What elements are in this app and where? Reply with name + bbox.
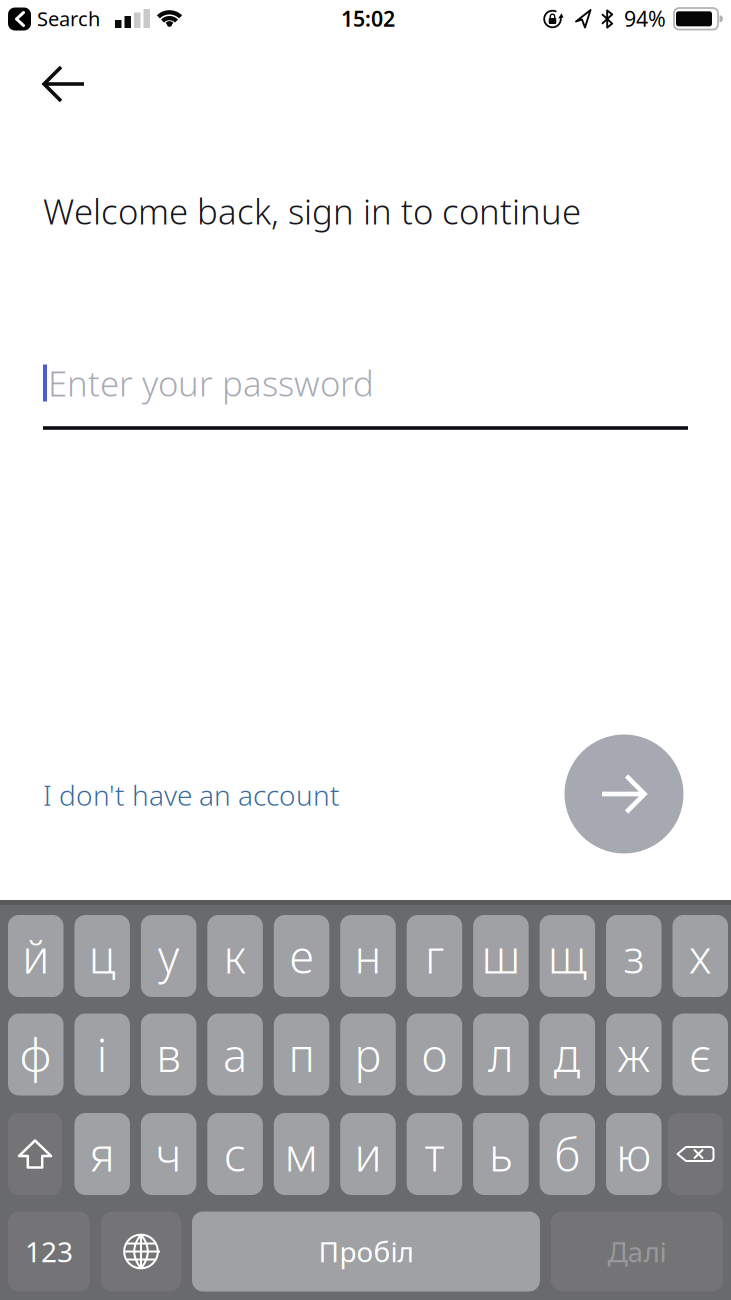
staticText: г — [425, 926, 444, 986]
button[interactable]: Enter your password — [29, 336, 702, 436]
staticText: у — [158, 926, 180, 986]
staticText: о — [421, 1024, 447, 1085]
button[interactable]: щ — [540, 915, 595, 997]
button[interactable]: м — [274, 1113, 329, 1195]
staticText: 15:02 — [341, 4, 395, 33]
staticText: щ — [548, 926, 587, 986]
button[interactable]: і — [74, 1013, 130, 1095]
button[interactable]: Delete — [668, 1113, 723, 1195]
button[interactable]: Пробіл — [192, 1211, 540, 1291]
button[interactable]: с — [207, 1113, 263, 1195]
button[interactable]: й — [8, 915, 63, 997]
staticText: а — [223, 1024, 247, 1085]
button[interactable]: л — [473, 1013, 529, 1095]
staticText: п — [289, 1024, 315, 1085]
button[interactable]: п — [274, 1013, 329, 1095]
button[interactable]: и — [340, 1113, 396, 1195]
staticText: я — [90, 1124, 115, 1184]
button[interactable]: Next keyboard — [101, 1211, 181, 1291]
button[interactable]: ю — [606, 1113, 662, 1195]
button[interactable]: ц — [74, 915, 130, 997]
button[interactable]: х — [672, 915, 728, 997]
staticText: л — [488, 1024, 514, 1085]
button[interactable]: Shift — [8, 1113, 62, 1195]
button[interactable]: о — [407, 1013, 462, 1095]
staticText: т — [424, 1124, 444, 1184]
button[interactable]: б — [540, 1113, 595, 1195]
staticText: ж — [617, 1024, 650, 1085]
button[interactable]: р — [340, 1013, 396, 1095]
staticText: е — [290, 926, 314, 986]
button[interactable]: к — [207, 915, 263, 997]
button[interactable]: Далі — [551, 1211, 723, 1291]
staticText: в — [156, 1024, 181, 1085]
staticText: и — [354, 1124, 381, 1184]
button[interactable]: ь — [473, 1113, 529, 1195]
staticText: с — [224, 1124, 246, 1184]
staticText: Пробіл — [318, 1233, 413, 1270]
button[interactable]: є — [672, 1013, 728, 1095]
button[interactable]: з — [606, 915, 662, 997]
staticText: й — [22, 926, 49, 986]
button[interactable]: в — [141, 1013, 196, 1095]
staticText: д — [554, 1024, 581, 1085]
button[interactable]: т — [407, 1113, 462, 1195]
button[interactable]: д — [540, 1013, 595, 1095]
button[interactable]: я — [74, 1113, 130, 1195]
button[interactable]: I don't have an account — [43, 765, 363, 825]
button[interactable]: е — [274, 915, 329, 997]
button[interactable]: г — [407, 915, 462, 997]
button[interactable]: у — [141, 915, 196, 997]
staticText: б — [554, 1124, 580, 1184]
button[interactable]: Next — [564, 734, 683, 853]
button[interactable]: 123 — [8, 1211, 90, 1291]
staticText: Enter your password — [48, 360, 374, 406]
staticText: є — [689, 1024, 711, 1085]
staticText: м — [285, 1124, 319, 1184]
staticText: Welcome back, sign in to continue — [43, 188, 581, 234]
staticText: ь — [489, 1124, 513, 1184]
staticText: Search — [37, 5, 100, 32]
staticText: I don't have an account — [43, 776, 340, 814]
staticText: ц — [89, 926, 116, 986]
staticText: ш — [481, 926, 520, 986]
staticText: р — [354, 1024, 381, 1085]
staticText: к — [224, 926, 247, 986]
staticText: н — [354, 926, 381, 986]
staticText: ю — [616, 1124, 651, 1184]
staticText: з — [623, 926, 644, 986]
staticText: Далі — [607, 1233, 666, 1270]
staticText: х — [689, 926, 711, 986]
staticText: і — [97, 1024, 108, 1085]
staticText: 123 — [25, 1233, 73, 1270]
button[interactable]: а — [207, 1013, 263, 1095]
staticText: ф — [20, 1024, 52, 1085]
button[interactable]: ч — [141, 1113, 196, 1195]
staticText: 94% — [624, 4, 666, 33]
button[interactable]: ж — [606, 1013, 662, 1095]
button[interactable]: ш — [473, 915, 529, 997]
staticText: ч — [156, 1124, 182, 1184]
button[interactable]: ф — [8, 1013, 63, 1095]
button[interactable]: Back — [42, 63, 86, 105]
button[interactable]: н — [340, 915, 396, 997]
